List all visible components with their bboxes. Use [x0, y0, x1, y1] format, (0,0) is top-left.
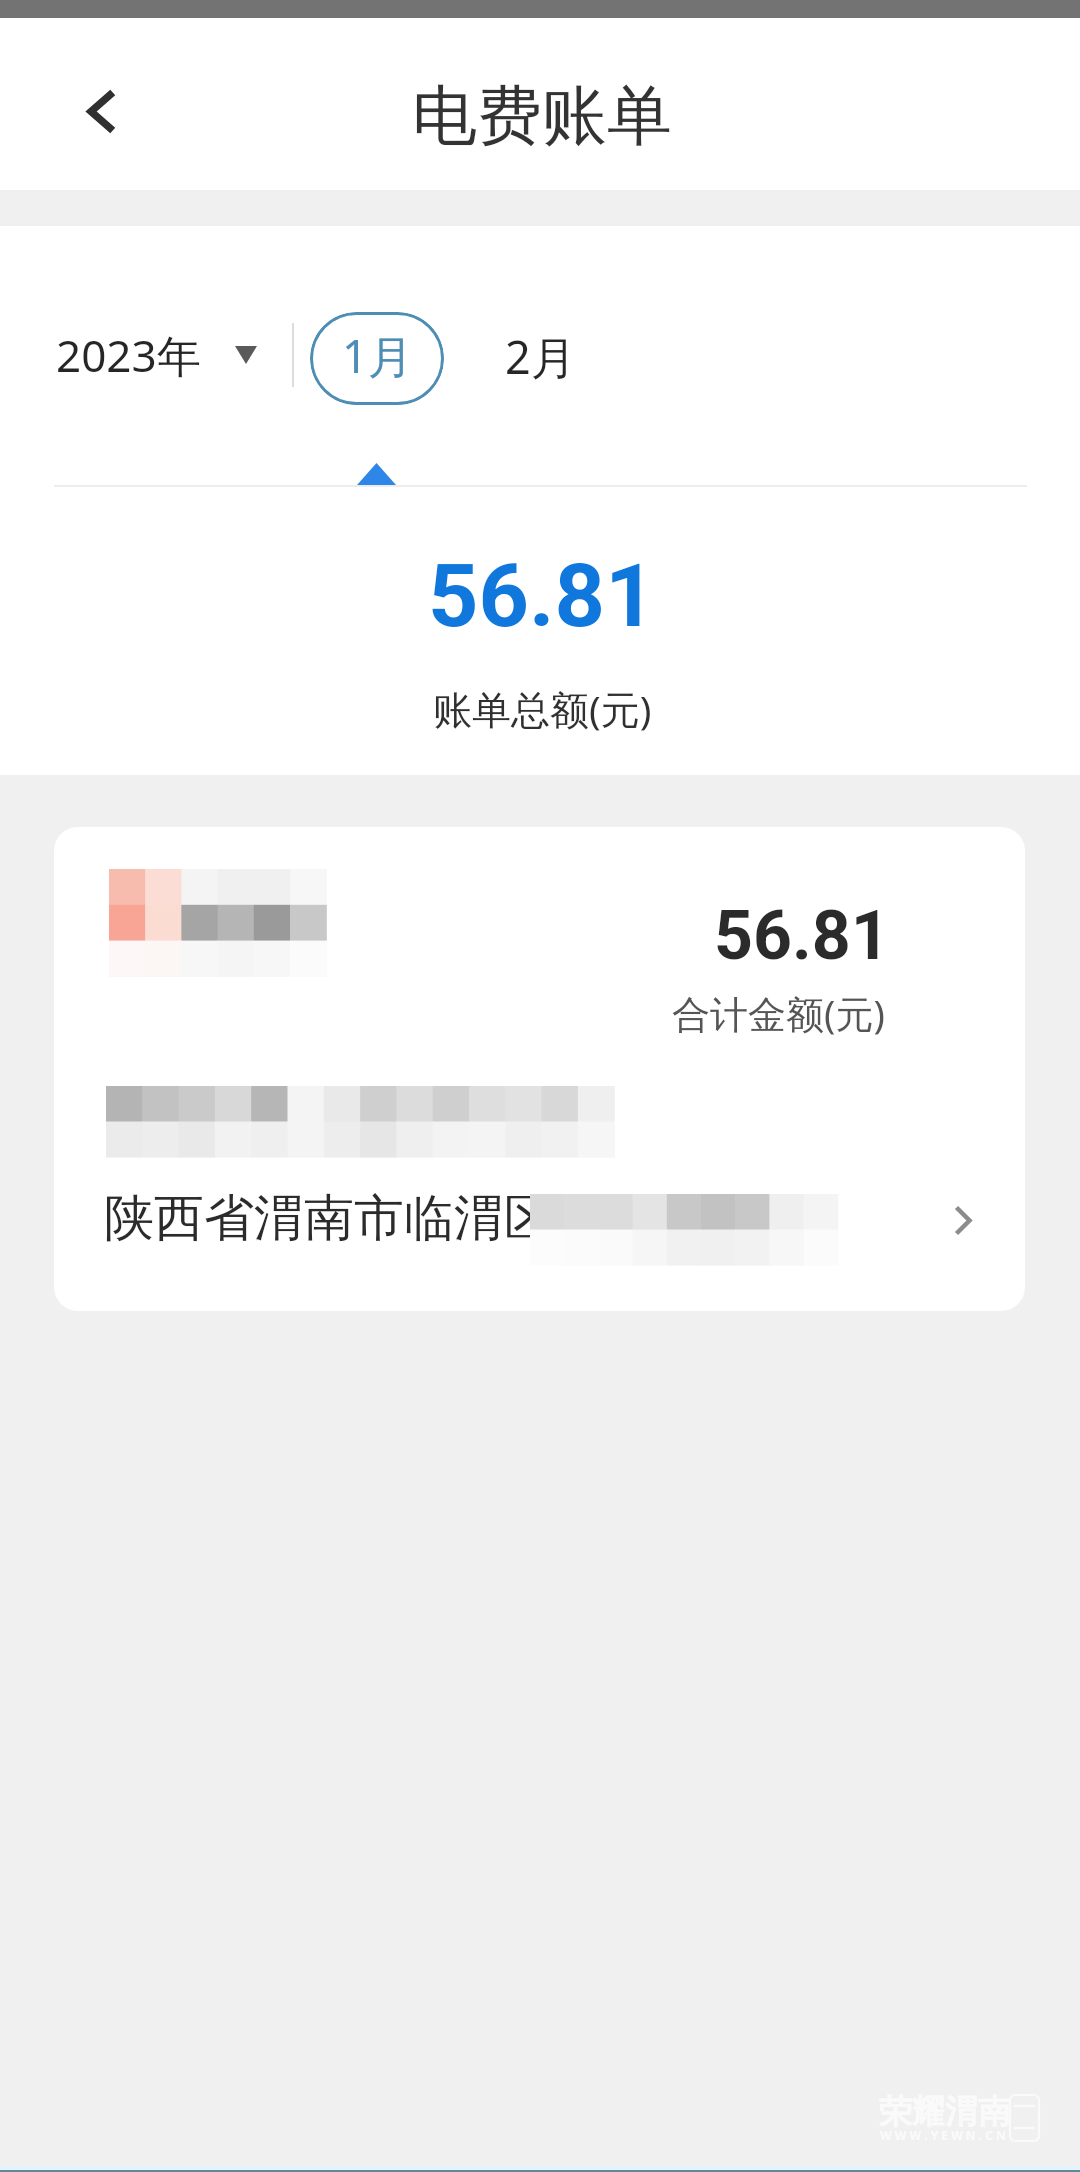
staticText: W W W . Y E W N . C N: [880, 2127, 1006, 2143]
button[interactable]: 1月: [310, 312, 444, 405]
staticText: 1月: [342, 325, 413, 386]
staticText: 陕西省渭南市临渭区: [104, 1187, 554, 1250]
staticText: 56.81: [714, 896, 890, 976]
staticText: 合计金额(元): [672, 987, 885, 1039]
staticText: 2023年: [56, 325, 201, 385]
staticText: 荣耀渭南: [879, 2091, 1011, 2133]
staticText: 电费账单: [412, 75, 672, 157]
staticText: 56.81: [428, 544, 656, 647]
button[interactable]: 2023年: [40, 300, 260, 410]
button[interactable]: 56.81: [54, 827, 1025, 1311]
button[interactable]: Back: [27, 34, 167, 174]
button[interactable]: View detail: [918, 1175, 1008, 1265]
staticText: 账单总额(元): [433, 682, 652, 735]
staticText: 2月: [505, 326, 576, 387]
button[interactable]: 2月: [482, 312, 598, 405]
